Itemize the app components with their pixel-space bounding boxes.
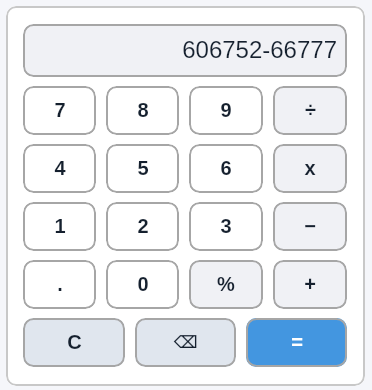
button[interactable]: 0 (106, 260, 179, 309)
staticText: . (57, 273, 63, 295)
staticText: 5 (137, 157, 149, 179)
staticText: C (67, 331, 82, 353)
button[interactable]: + (273, 260, 347, 309)
staticText: 6 (220, 157, 232, 179)
button[interactable]: 6 (189, 144, 263, 193)
staticText: 1 (54, 215, 66, 237)
button[interactable]: 5 (106, 144, 179, 193)
button[interactable]: 9 (189, 86, 263, 135)
button[interactable]: 7 (23, 86, 96, 135)
button[interactable]: 2 (106, 202, 179, 251)
staticText: − (304, 215, 316, 237)
staticText: 2 (137, 215, 149, 237)
button[interactable]: = (246, 318, 347, 367)
staticText: x (304, 157, 316, 179)
staticText: ÷ (305, 99, 316, 121)
button[interactable]: 4 (23, 144, 96, 193)
button[interactable]: x (273, 144, 347, 193)
staticText: 3 (220, 215, 232, 237)
button[interactable]: 1 (23, 202, 96, 251)
staticText: 7 (54, 99, 66, 121)
button[interactable]: Backspace (135, 318, 236, 367)
staticText: 8 (137, 99, 149, 121)
staticText: 606752-66777 (182, 36, 337, 63)
button[interactable]: % (189, 260, 263, 309)
button[interactable]: 3 (189, 202, 263, 251)
staticText: 9 (220, 99, 232, 121)
button[interactable]: ÷ (273, 86, 347, 135)
button[interactable]: C (23, 318, 125, 367)
staticText: ⌫ (173, 332, 198, 352)
button[interactable]: − (273, 202, 347, 251)
staticText: 4 (54, 157, 66, 179)
staticText: 0 (137, 273, 149, 295)
button[interactable]: 8 (106, 86, 179, 135)
staticText: % (217, 273, 235, 295)
button[interactable]: . (23, 260, 96, 309)
staticText: = (291, 331, 303, 353)
staticText: + (304, 273, 316, 295)
